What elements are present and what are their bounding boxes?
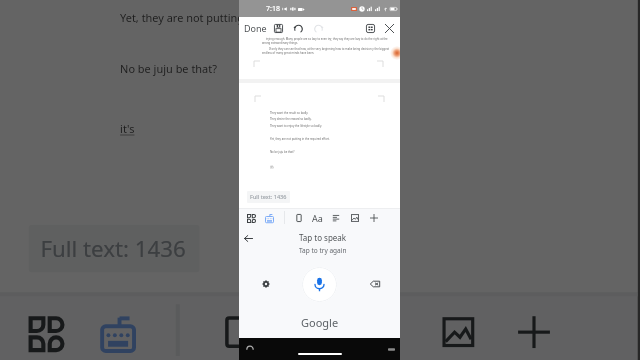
button[interactable]: Keyboard (262, 211, 276, 225)
button[interactable]: Apps (17, 304, 72, 360)
staticText: Done (244, 22, 267, 34)
staticText: They desire the reward so badly. (270, 117, 312, 121)
button[interactable]: Document (208, 304, 263, 360)
button[interactable]: More (367, 211, 381, 225)
staticText: No be juju be that? (120, 61, 220, 77)
staticText: Google (301, 315, 339, 330)
staticText: No be juju be that? (270, 150, 295, 154)
button[interactable]: Translate (279, 304, 335, 360)
button[interactable]: Settings (259, 277, 272, 290)
staticText: They want the result so badly. (270, 111, 309, 115)
staticText: it's (270, 165, 274, 169)
button[interactable]: Redo (310, 20, 326, 36)
staticText: endless of many great minds have been. (262, 51, 315, 55)
staticText: Yet, they are not putting in the require… (270, 137, 330, 141)
staticText: They want to enjoy the lifestyle so badl… (270, 124, 322, 128)
staticText: Full text: 1436 (250, 193, 287, 201)
button[interactable]: Done (242, 20, 269, 36)
button[interactable]: Save (270, 20, 286, 36)
button[interactable]: Microphone (302, 267, 337, 302)
button[interactable]: Text (329, 211, 343, 225)
staticText: Full text: 1436 (40, 233, 188, 264)
button[interactable]: Apps (244, 211, 258, 225)
button[interactable]: Back (241, 231, 255, 245)
button[interactable]: Backspace (368, 277, 381, 290)
staticText: it's (120, 121, 136, 137)
button[interactable]: Text (355, 304, 411, 360)
staticText: Aa (287, 308, 331, 356)
staticText: 7:18 (266, 4, 280, 14)
staticText: wrong extraordinary things. (262, 41, 299, 45)
staticText: Aa (312, 212, 323, 224)
button[interactable]: More (506, 304, 562, 360)
staticText: Tap to try again (299, 246, 347, 255)
button[interactable]: Image (430, 304, 486, 360)
button[interactable]: Keyboard (88, 304, 144, 360)
button[interactable]: Image (348, 211, 362, 225)
button[interactable]: Close (381, 20, 397, 36)
button[interactable]: Translate (310, 211, 324, 225)
staticText: Yet, they are not putting in the require… (120, 10, 359, 26)
staticText: Tap to speak (299, 232, 347, 243)
button[interactable]: Text options (362, 20, 378, 36)
button[interactable]: Undo (290, 20, 306, 36)
staticText: trying enough. Many people are so lazy t… (266, 37, 388, 41)
button[interactable]: Document (292, 211, 306, 225)
staticText: If only they can see that how, at the ve… (269, 47, 390, 51)
